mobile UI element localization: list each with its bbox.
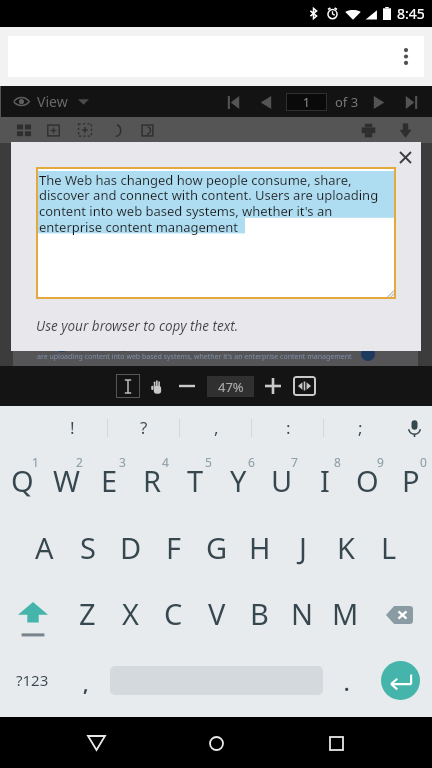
button[interactable]: View: [13, 92, 89, 111]
button[interactable]: 1: [286, 93, 327, 111]
staticText: I: [320, 461, 330, 500]
button[interactable]: S: [66, 517, 109, 584]
staticText: 7: [291, 454, 298, 470]
button[interactable]: ,: [64, 651, 107, 717]
button[interactable]: .: [325, 651, 368, 717]
staticText: The Web has changed how people consume, …: [61, 343, 379, 353]
button[interactable]: Next page: [370, 92, 388, 112]
button[interactable]: More options: [388, 36, 424, 77]
button[interactable]: C: [152, 584, 195, 651]
button[interactable]: 4: [131, 450, 174, 517]
staticText: ?: [140, 416, 148, 439]
button[interactable]: Rotate left: [140, 123, 155, 138]
button[interactable]: J: [281, 517, 324, 584]
button[interactable]: L: [367, 517, 410, 584]
button[interactable]: Zoom in: [263, 376, 283, 396]
staticText: :: [286, 416, 291, 439]
staticText: P: [402, 461, 420, 500]
button[interactable]: M: [324, 584, 367, 651]
button[interactable]: 0: [389, 450, 432, 517]
staticText: ,: [83, 671, 89, 697]
button[interactable]: Fit page: [46, 123, 61, 138]
button[interactable]: ?123: [0, 651, 64, 717]
button[interactable]: Z: [66, 584, 109, 651]
staticText: of 3: [335, 93, 359, 111]
staticText: !: [70, 416, 75, 439]
button[interactable]: !: [36, 406, 108, 450]
button[interactable]: Pan: [146, 376, 167, 397]
staticText: S: [80, 528, 96, 567]
button[interactable]: 7: [260, 450, 303, 517]
button[interactable]: X: [109, 584, 152, 651]
button[interactable]: 47%: [207, 376, 254, 397]
button[interactable]: Enter: [381, 661, 420, 700]
staticText: J: [299, 528, 307, 567]
staticText: 9: [377, 454, 384, 470]
staticText: 1: [303, 94, 310, 110]
staticText: V: [208, 594, 226, 633]
staticText: C: [164, 594, 183, 633]
staticText: E: [101, 461, 118, 500]
button[interactable]: G: [195, 517, 238, 584]
staticText: K: [337, 528, 355, 567]
button[interactable]: Select area: [77, 122, 93, 138]
button[interactable]: First page: [224, 92, 242, 112]
button[interactable]: A: [23, 517, 66, 584]
staticText: are uploading content into web based sys…: [37, 352, 352, 362]
button[interactable]: ;: [324, 406, 396, 450]
button[interactable]: N: [281, 584, 324, 651]
button[interactable]: D: [109, 517, 152, 584]
staticText: W: [53, 461, 80, 500]
button[interactable]: Voice input: [396, 406, 432, 450]
button[interactable]: Fit width: [293, 376, 316, 396]
staticText: O: [356, 461, 379, 500]
button[interactable]: ?: [108, 406, 180, 450]
button[interactable]: ,: [180, 406, 252, 450]
button[interactable]: V: [195, 584, 238, 651]
button[interactable]: Close: [391, 143, 419, 171]
button[interactable]: Download: [397, 122, 414, 139]
button[interactable]: Thumbnails: [16, 122, 32, 138]
button[interactable]: 8: [303, 450, 346, 517]
button[interactable]: Back: [72, 719, 120, 767]
button[interactable]: 3: [88, 450, 131, 517]
button[interactable]: K: [324, 517, 367, 584]
button[interactable]: Recent apps: [312, 719, 360, 767]
button[interactable]: :: [252, 406, 324, 450]
staticText: 2: [76, 454, 83, 470]
button[interactable]: Shift: [0, 584, 66, 651]
staticText: X: [122, 594, 139, 633]
staticText: D: [120, 528, 142, 567]
staticText: 4: [162, 454, 169, 470]
button[interactable]: F: [152, 517, 195, 584]
staticText: H: [249, 528, 271, 567]
staticText: Y: [230, 461, 247, 500]
staticText: B: [250, 594, 269, 633]
button[interactable]: Last page: [402, 92, 420, 112]
staticText: G: [206, 528, 228, 567]
staticText: U: [271, 461, 293, 500]
staticText: 1: [32, 454, 39, 470]
button[interactable]: 9: [346, 450, 389, 517]
staticText: The Web has changed how people consume, …: [39, 171, 394, 236]
button[interactable]: Rotate: [109, 123, 124, 138]
staticText: 3: [119, 454, 126, 470]
button[interactable]: H: [238, 517, 281, 584]
staticText: 47%: [218, 378, 244, 396]
staticText: Z: [79, 594, 96, 633]
button[interactable]: Zoom out: [177, 376, 197, 396]
staticText: R: [143, 461, 162, 500]
button[interactable]: Print: [360, 122, 377, 139]
staticText: N: [291, 594, 314, 633]
button[interactable]: Previous page: [256, 92, 274, 112]
button[interactable]: 1: [0, 450, 44, 517]
button[interactable]: 2: [44, 450, 88, 517]
button[interactable]: B: [238, 584, 281, 651]
button[interactable]: 6: [217, 450, 260, 517]
button[interactable]: Home: [192, 719, 240, 767]
staticText: A: [35, 528, 54, 567]
button[interactable]: Backspace: [367, 584, 432, 651]
button[interactable]: 5: [174, 450, 217, 517]
button[interactable]: Select text: [116, 374, 140, 398]
